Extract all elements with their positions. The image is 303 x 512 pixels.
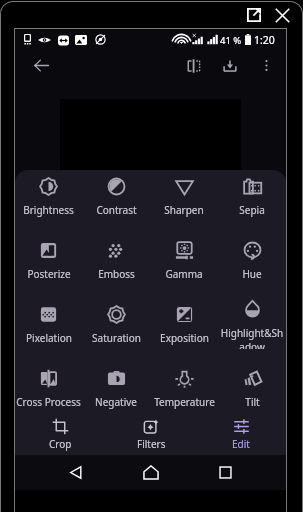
staticText: 1:20	[254, 33, 275, 47]
button[interactable]: Hue	[218, 221, 286, 285]
button[interactable]: Negative	[82, 349, 150, 413]
staticText: Posterize	[27, 267, 71, 281]
button[interactable]: Highlight&Shadow	[218, 285, 286, 349]
staticText: Edit	[232, 437, 250, 451]
button[interactable]: Temperature	[150, 349, 218, 413]
button[interactable]: Exposition	[150, 285, 218, 349]
button[interactable]: Close	[271, 4, 293, 26]
button[interactable]: Pixelation	[15, 285, 82, 349]
button[interactable]: More options	[248, 51, 284, 80]
staticText: 41 %	[220, 34, 242, 47]
button[interactable]: Crop	[15, 413, 106, 455]
staticText: Crop	[49, 437, 72, 451]
staticText: Sharpen	[164, 203, 204, 217]
button[interactable]: Open in new window	[243, 4, 265, 26]
button[interactable]: Back	[38, 455, 113, 490]
button[interactable]: Cross Process	[15, 349, 82, 413]
staticText: Filters	[137, 437, 166, 451]
button[interactable]: Sharpen	[150, 170, 218, 221]
staticText: Gamma	[165, 267, 203, 281]
button[interactable]: Saturation	[82, 285, 150, 349]
staticText: Emboss	[98, 267, 135, 281]
button[interactable]: Tilt	[218, 349, 286, 413]
staticText: Cross Process	[16, 395, 81, 409]
staticText: Saturation	[92, 331, 141, 345]
button[interactable]: Recents	[188, 455, 263, 490]
staticText: Exposition	[160, 331, 209, 345]
staticText: Brightness	[23, 203, 74, 217]
button[interactable]: Filters	[106, 413, 196, 455]
staticText: Temperature	[154, 395, 215, 409]
button[interactable]: Contrast	[82, 170, 150, 221]
button[interactable]: Emboss	[82, 221, 150, 285]
button[interactable]: Edit	[196, 413, 286, 455]
button[interactable]: Gamma	[150, 221, 218, 285]
button[interactable]: Posterize	[15, 221, 82, 285]
staticText: Sepia	[239, 203, 265, 217]
staticText: Highlight&Shadow	[218, 326, 286, 349]
staticText: Contrast	[96, 203, 137, 217]
staticText: Hue	[242, 267, 262, 281]
button[interactable]: Compare	[175, 51, 213, 80]
button[interactable]: Brightness	[15, 170, 82, 221]
staticText: Tilt	[245, 395, 260, 409]
button[interactable]: Back	[22, 51, 60, 80]
staticText: Negative	[95, 395, 137, 409]
button[interactable]: Save	[211, 51, 249, 80]
button[interactable]: Sepia	[218, 170, 286, 221]
staticText: Pixelation	[26, 331, 72, 345]
button[interactable]: Home	[113, 455, 188, 490]
